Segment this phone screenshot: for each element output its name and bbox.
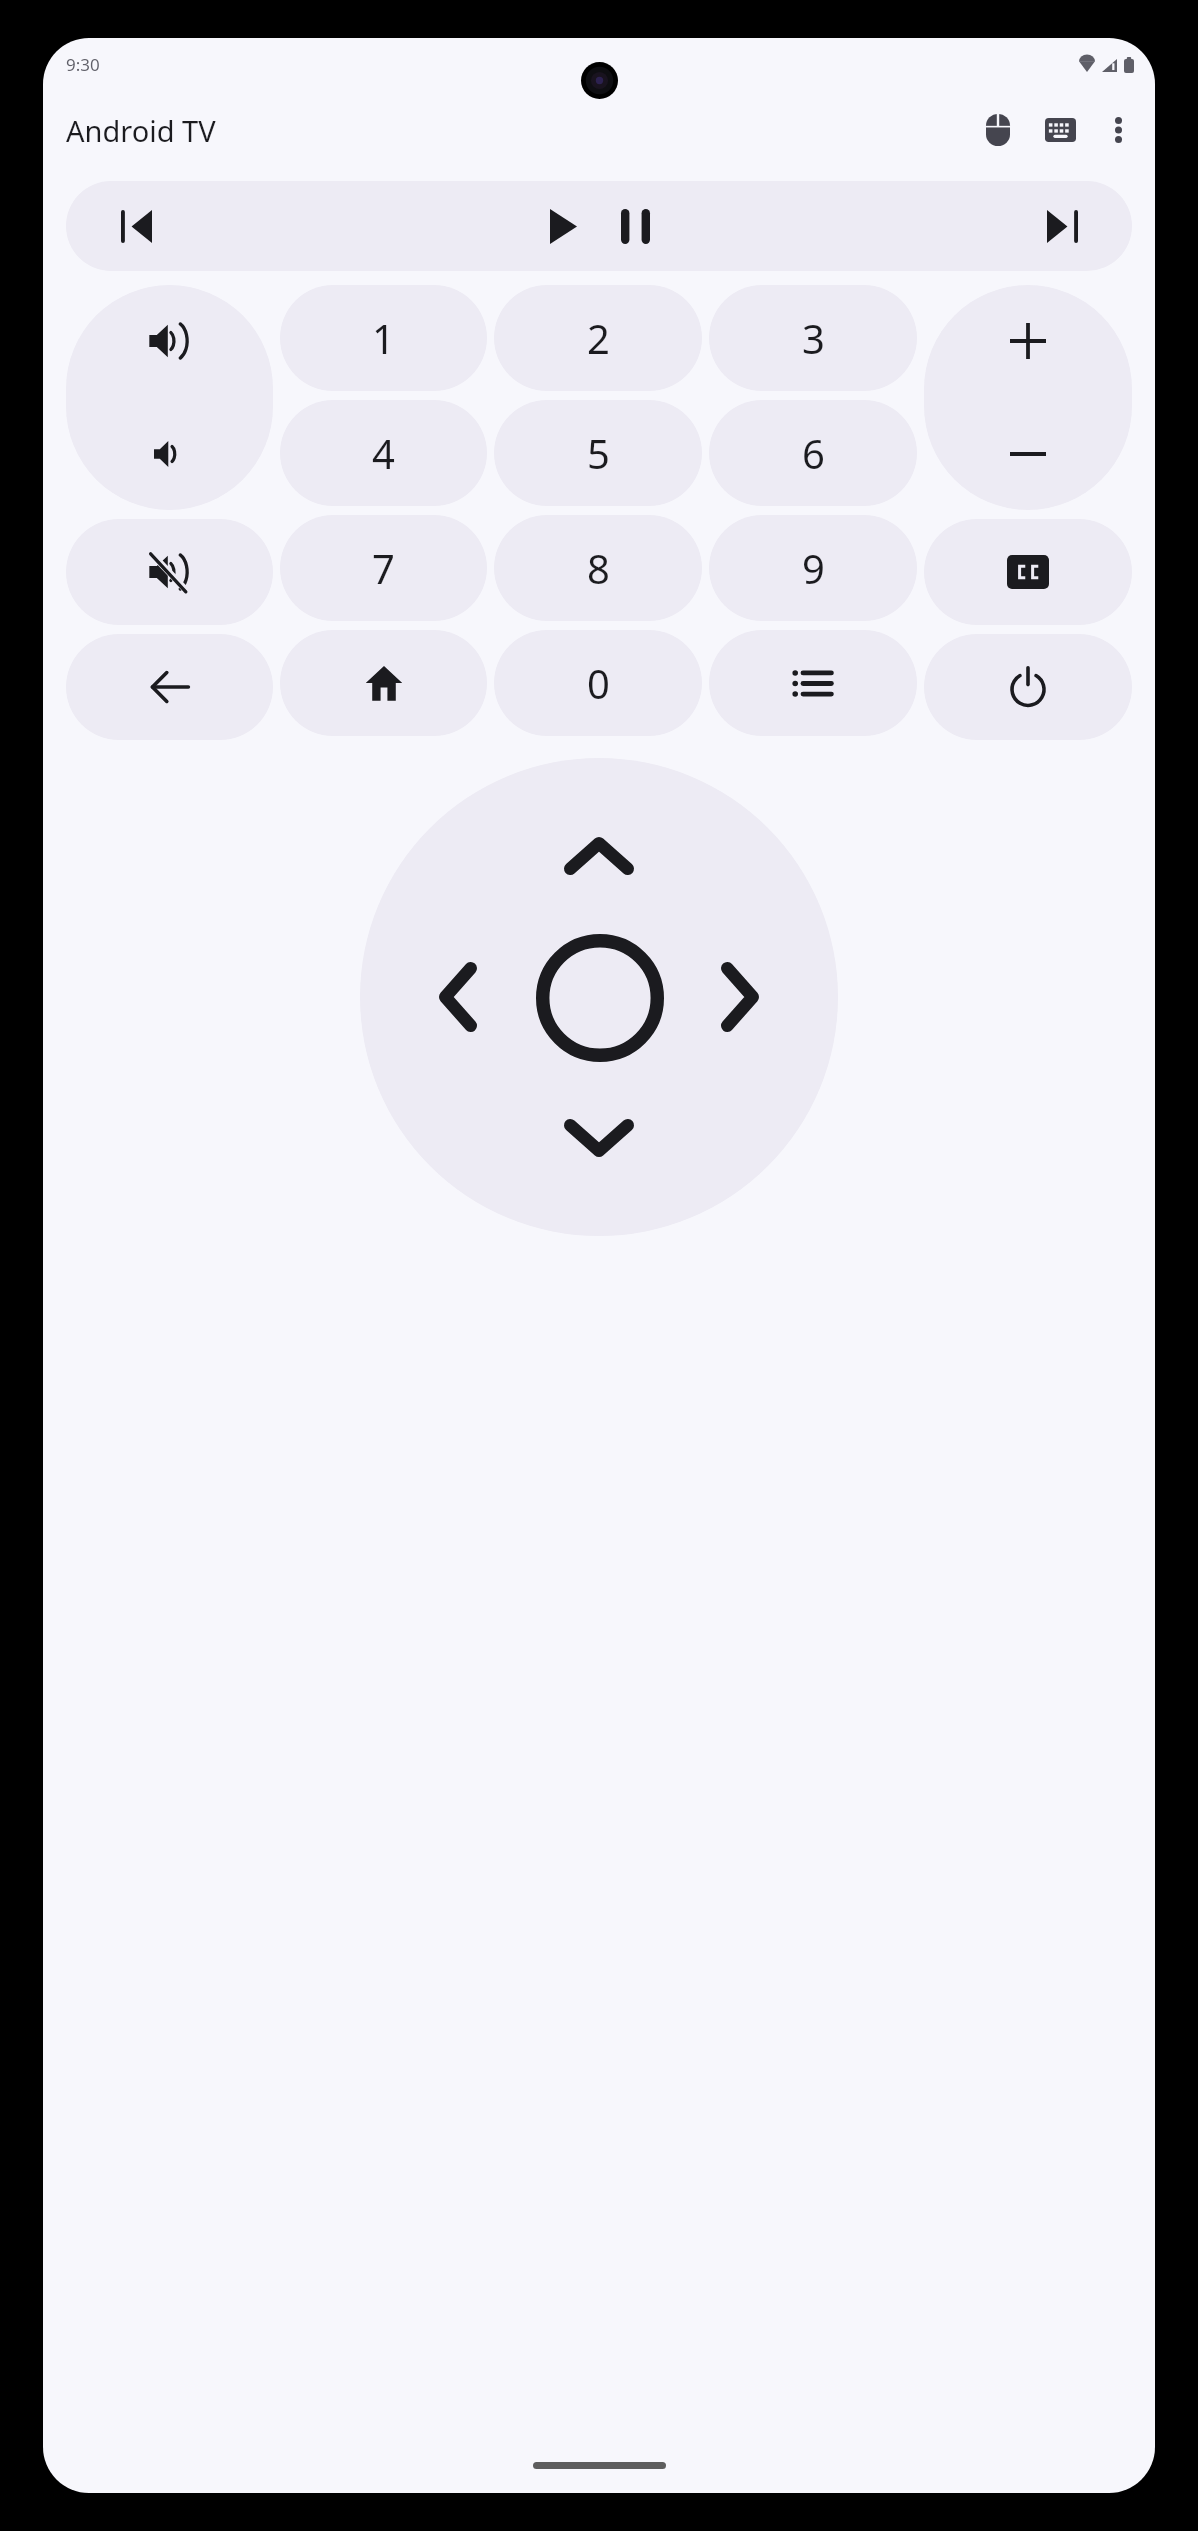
button[interactable]: Closed captions: [924, 519, 1132, 625]
staticText: 5: [587, 426, 610, 480]
button[interactable]: Select: [527, 925, 672, 1070]
button[interactable]: Channel up: [924, 285, 1132, 397]
button[interactable]: 4: [280, 400, 487, 506]
staticText: 2: [587, 311, 610, 365]
button[interactable]: 1: [280, 285, 487, 391]
staticText: 1: [372, 311, 395, 365]
button[interactable]: Mouse mode: [973, 105, 1023, 155]
button[interactable]: 5: [494, 400, 702, 506]
button[interactable]: Volume down: [66, 397, 273, 510]
staticText: Android TV: [66, 111, 216, 150]
button[interactable]: Volume up: [66, 285, 273, 397]
staticText: 9: [802, 541, 825, 595]
button[interactable]: Next: [992, 181, 1132, 271]
button[interactable]: Previous: [66, 181, 206, 271]
staticText: 3: [802, 311, 825, 365]
button[interactable]: Left: [402, 941, 514, 1053]
button[interactable]: 9: [709, 515, 917, 621]
button[interactable]: Mute: [66, 519, 273, 625]
button[interactable]: 3: [709, 285, 917, 391]
staticText: 0: [587, 656, 610, 710]
button[interactable]: Home: [280, 630, 487, 736]
button[interactable]: Up: [543, 800, 655, 912]
staticText: 4: [372, 426, 395, 480]
staticText: 7: [372, 541, 395, 595]
staticText: 9:30: [66, 53, 100, 76]
button[interactable]: Right: [684, 941, 796, 1053]
staticText: 6: [802, 426, 825, 480]
button[interactable]: Down: [543, 1082, 655, 1194]
button[interactable]: Back: [66, 634, 273, 740]
staticText: 8: [587, 541, 610, 595]
button[interactable]: 8: [494, 515, 702, 621]
button[interactable]: 6: [709, 400, 917, 506]
button[interactable]: Keyboard: [1035, 105, 1085, 155]
button[interactable]: 0: [494, 630, 702, 736]
button[interactable]: 2: [494, 285, 702, 391]
button[interactable]: Play: [527, 190, 599, 262]
button[interactable]: 7: [280, 515, 487, 621]
button[interactable]: Channel down: [924, 397, 1132, 510]
button[interactable]: Pause: [599, 190, 671, 262]
button[interactable]: Power: [924, 634, 1132, 740]
button[interactable]: Menu: [709, 630, 917, 736]
button[interactable]: More options: [1093, 105, 1143, 155]
